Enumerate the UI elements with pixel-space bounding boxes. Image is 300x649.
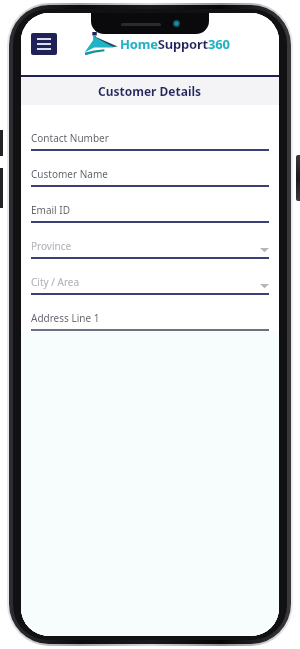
button[interactable]: City / Area (31, 259, 269, 295)
button[interactable]: Email ID (31, 187, 269, 223)
button[interactable]: Province (31, 223, 269, 259)
button[interactable]: Address Line 1 (31, 295, 269, 331)
button[interactable]: Contact Number (31, 115, 269, 151)
staticText: City / Area (31, 275, 260, 289)
button[interactable]: Open navigation menu (31, 33, 57, 55)
staticText: Province (31, 239, 260, 253)
button[interactable]: HomeSupport360 (84, 31, 230, 57)
staticText: Contact Number (31, 131, 269, 145)
staticText: Customer Name (31, 167, 269, 181)
button[interactable]: Customer Name (31, 151, 269, 187)
staticText: Email ID (31, 203, 269, 217)
staticText: Address Line 1 (31, 311, 269, 325)
staticText: HomeSupport360 (120, 35, 230, 53)
staticText: Customer Details (98, 83, 202, 99)
